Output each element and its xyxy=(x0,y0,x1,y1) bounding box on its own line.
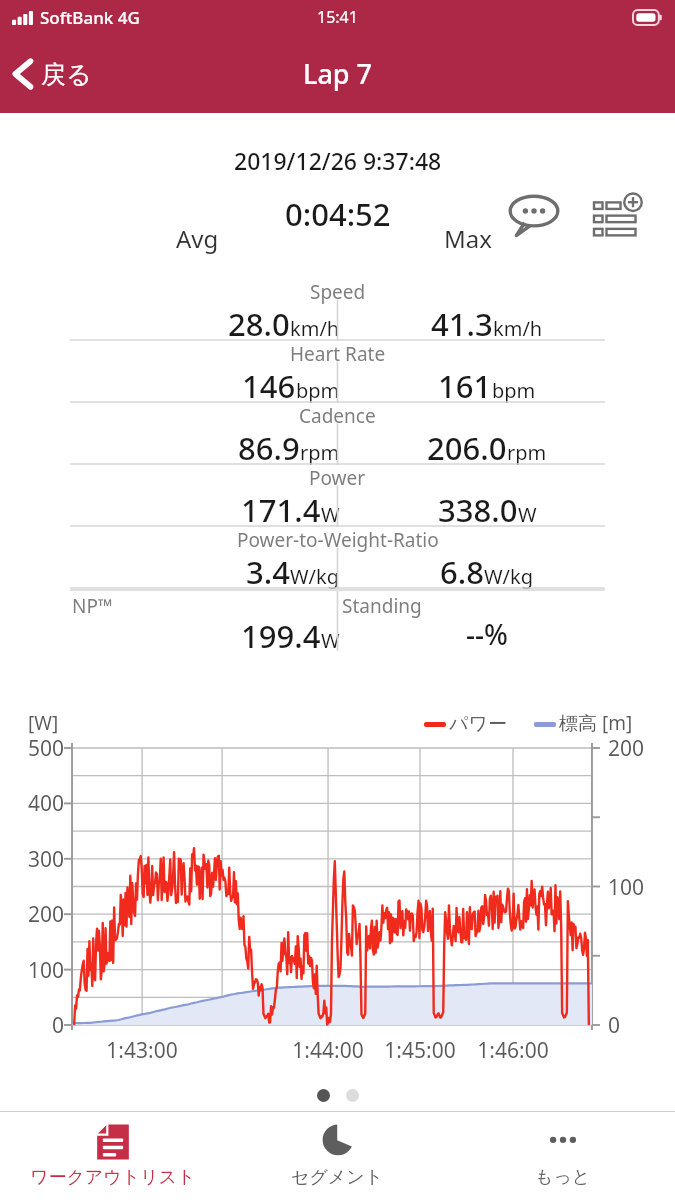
staticText: 41.3 xyxy=(431,303,493,345)
staticText: 1:43:00 xyxy=(86,1036,198,1065)
staticText: 3.4 xyxy=(246,551,290,593)
staticText: 0 xyxy=(0,1011,64,1040)
button[interactable]: 戻る xyxy=(0,46,110,102)
staticText: [m] xyxy=(602,710,633,736)
button[interactable]: Add to list xyxy=(588,191,648,239)
staticText: 28.0 xyxy=(228,303,290,345)
button[interactable]: セグメント xyxy=(225,1112,450,1189)
staticText: 146 xyxy=(242,365,296,407)
staticText: rpm xyxy=(300,439,340,466)
staticText: SoftBank 4G xyxy=(40,6,140,29)
staticText: [W] xyxy=(28,710,59,736)
button[interactable]: Cadence xyxy=(0,403,675,465)
button[interactable]: Power xyxy=(0,465,675,527)
button[interactable]: Speed xyxy=(0,279,675,341)
staticText: km/h xyxy=(290,315,340,342)
staticText: 1:45:00 xyxy=(364,1036,476,1065)
staticText: NP™ xyxy=(72,593,113,619)
staticText: ワークアウトリスト xyxy=(30,1166,196,1189)
button[interactable]: NP™ xyxy=(0,589,675,651)
staticText: 206.0 xyxy=(427,427,507,469)
staticText: 戻る xyxy=(41,59,92,90)
staticText: 161 xyxy=(438,365,492,407)
staticText: 0:04:52 xyxy=(285,193,391,235)
staticText: 2019/12/26 9:37:48 xyxy=(234,145,442,176)
button[interactable]: [W] xyxy=(0,700,675,1070)
staticText: セグメント xyxy=(291,1166,384,1189)
staticText: 1:46:00 xyxy=(457,1036,569,1065)
staticText: 86.9 xyxy=(238,427,300,469)
staticText: --% xyxy=(466,615,508,653)
staticText: W/kg xyxy=(290,563,340,590)
button[interactable]: もっと xyxy=(450,1112,675,1189)
staticText: 100 xyxy=(608,873,645,902)
staticText: 171.4 xyxy=(241,489,321,531)
staticText: 6.8 xyxy=(440,551,484,593)
staticText: 標高 xyxy=(559,712,597,736)
staticText: 338.0 xyxy=(438,489,518,531)
staticText: 400 xyxy=(0,789,64,818)
staticText: Power xyxy=(309,465,366,491)
staticText: rpm xyxy=(507,439,547,466)
staticText: Standing xyxy=(342,593,422,619)
staticText: Max xyxy=(444,222,492,255)
staticText: bpm xyxy=(492,377,536,404)
staticText: Cadence xyxy=(299,403,376,429)
staticText: 500 xyxy=(0,734,64,763)
staticText: bpm xyxy=(296,377,340,404)
staticText: W xyxy=(321,501,340,528)
staticText: 1:44:00 xyxy=(272,1036,384,1065)
button[interactable]: Heart Rate xyxy=(0,341,675,403)
staticText: Heart Rate xyxy=(290,341,386,367)
staticText: km/h xyxy=(493,315,543,342)
staticText: 15:41 xyxy=(317,6,358,28)
staticText: 300 xyxy=(0,845,64,874)
staticText: W xyxy=(321,627,340,654)
button[interactable]: ワークアウトリスト xyxy=(0,1112,225,1189)
staticText: 0 xyxy=(608,1011,621,1040)
staticText: W/kg xyxy=(484,563,534,590)
staticText: Speed xyxy=(310,279,366,305)
staticText: W xyxy=(518,501,537,528)
button[interactable]: Comments xyxy=(505,191,563,239)
staticText: パワー xyxy=(449,712,507,736)
staticText: 200 xyxy=(608,734,645,763)
staticText: Power-to-Weight-Ratio xyxy=(237,527,439,553)
staticText: Avg xyxy=(176,222,219,255)
staticText: Lap 7 xyxy=(303,55,373,92)
staticText: もっと xyxy=(535,1166,591,1189)
staticText: 199.4 xyxy=(241,615,321,657)
staticText: 100 xyxy=(0,956,64,985)
staticText: 200 xyxy=(0,900,64,929)
button[interactable]: Power-to-Weight-Ratio xyxy=(0,527,675,589)
